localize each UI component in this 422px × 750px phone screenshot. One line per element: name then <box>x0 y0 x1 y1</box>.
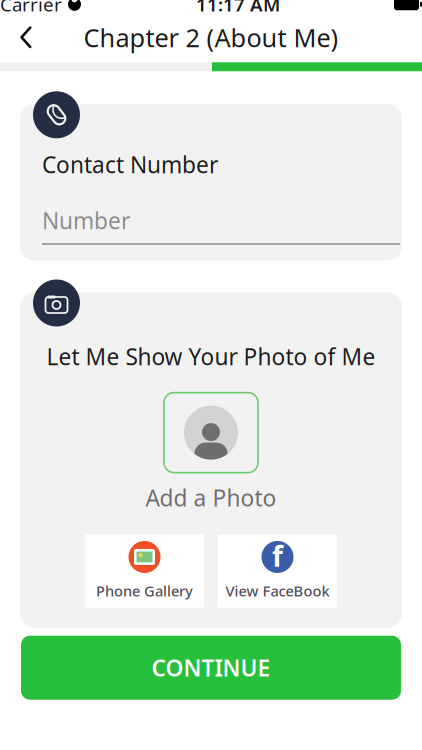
staticText: Add a Photo <box>145 483 276 513</box>
staticText: View FaceBook <box>225 581 329 600</box>
staticText: f <box>272 537 283 575</box>
staticText: 11:17 AM <box>196 0 280 17</box>
staticText: CONTINUE <box>151 653 270 683</box>
staticText: Let Me Show Your Photo of Me <box>46 341 375 372</box>
button[interactable]: f <box>218 535 337 608</box>
button[interactable]: Back <box>0 16 52 58</box>
staticText: Carrier <box>0 0 62 17</box>
staticText: Chapter 2 (About Me) <box>83 20 338 54</box>
staticText: Contact Number <box>42 149 218 179</box>
button[interactable]: CONTINUE <box>21 636 401 700</box>
button[interactable]: Phone Gallery <box>85 535 204 608</box>
staticText: Phone Gallery <box>96 581 193 600</box>
staticText: Number <box>42 205 130 235</box>
